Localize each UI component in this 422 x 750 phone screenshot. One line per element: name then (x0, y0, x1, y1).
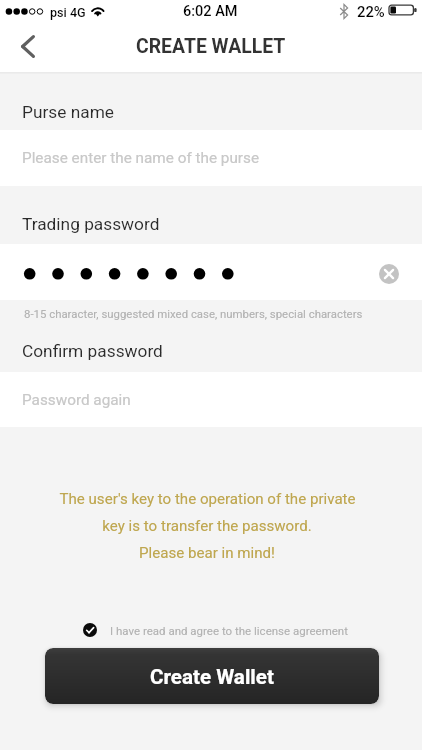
staticText: Please bear in mind! (139, 544, 275, 562)
staticText: Confirm password (22, 341, 163, 361)
button[interactable]: I have read and agree to the license agr… (83, 620, 348, 640)
button[interactable]: Please enter the name of the purse (0, 130, 422, 186)
staticText: CREATE WALLET (136, 35, 286, 58)
button[interactable]: Clear password (379, 264, 399, 284)
staticText: 8-15 character, suggested mixed case, nu… (24, 307, 363, 320)
staticText: psi 4G (50, 5, 86, 20)
staticText: 6:02 AM (183, 3, 238, 20)
staticText: 22% (357, 3, 385, 20)
staticText: Please enter the name of the purse (22, 149, 260, 167)
staticText: Trading password (22, 214, 160, 234)
staticText: key is to transfer the password. (102, 517, 312, 535)
button[interactable]: Back (5, 23, 51, 69)
button[interactable]: Password again (0, 372, 422, 427)
staticText: Password again (22, 391, 131, 409)
button[interactable]: Create Wallet (45, 648, 379, 704)
staticText: The user's key to the operation of the p… (59, 490, 356, 508)
staticText: I have read and agree to the license agr… (110, 624, 348, 637)
staticText: Purse name (22, 102, 114, 122)
staticText: Create Wallet (150, 665, 274, 689)
